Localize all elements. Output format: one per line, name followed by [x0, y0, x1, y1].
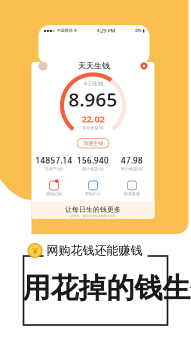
staticText: 总资产(元)	[45, 166, 63, 171]
staticText: 天天生钱	[78, 61, 110, 71]
staticText: 联系客服	[124, 191, 140, 196]
staticText: ¥	[32, 244, 37, 257]
staticText: 加速生钱	[83, 140, 103, 146]
staticText: 帮助中心	[85, 191, 101, 196]
button[interactable]: 加速生钱	[77, 138, 109, 148]
button[interactable]: 花钱记账	[34, 177, 73, 196]
staticText: 47.98	[121, 155, 143, 166]
staticText: ▪▪▪▫ 中国移动 令	[43, 28, 77, 33]
staticText: 花钱记账	[46, 191, 62, 196]
staticText: 22.02	[81, 113, 104, 125]
staticText: 30% ▮	[134, 28, 144, 33]
button[interactable]: Profile	[38, 61, 47, 70]
staticText: 花得多 · 赚得多的收益都算在这里	[70, 214, 115, 217]
staticText: 网购花钱还能赚钱	[46, 243, 142, 258]
staticText: 156.940	[77, 155, 109, 166]
staticText: 今日生钱	[83, 80, 103, 87]
staticText: 8.965	[68, 87, 117, 112]
staticText: 4:29 PM	[96, 27, 115, 34]
staticText: 累计收益(元)	[82, 166, 104, 171]
staticText: 让每日生的钱更多	[65, 205, 121, 213]
staticText: 年化收益(%)	[82, 125, 103, 130]
staticText: 昨日收益(元)	[121, 166, 143, 171]
staticText: 用花掉的钱生钱	[22, 271, 191, 305]
staticText: 14857.14	[35, 155, 72, 166]
button[interactable]: Settings	[140, 62, 147, 69]
button[interactable]: 联系客服	[112, 177, 151, 196]
button[interactable]: 帮助中心	[73, 177, 112, 196]
